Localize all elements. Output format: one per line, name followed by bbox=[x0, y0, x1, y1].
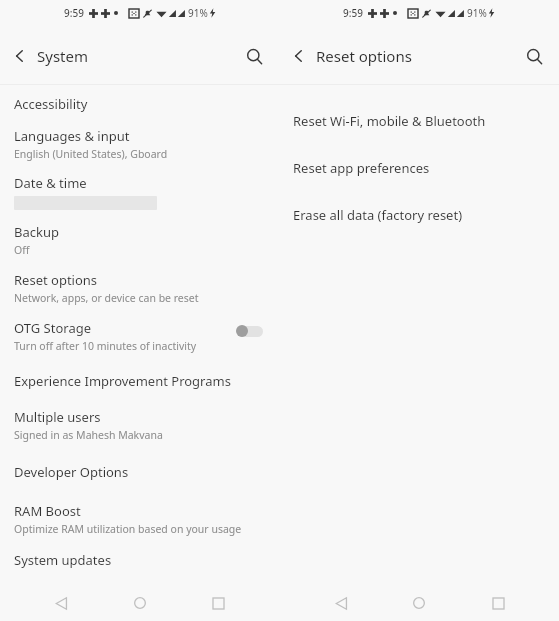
staticText: English (United States), Gboard bbox=[14, 147, 168, 161]
staticText: Multiple users bbox=[14, 408, 101, 426]
staticText: Backup bbox=[14, 223, 59, 241]
button[interactable]: Reset options bbox=[0, 264, 279, 312]
button[interactable]: Erase all data (factory reset) bbox=[279, 203, 559, 227]
button[interactable]: Recent apps bbox=[201, 586, 235, 620]
staticText: System bbox=[37, 46, 88, 66]
staticText: Accessibility bbox=[14, 95, 88, 113]
button[interactable]: Reset app preferences bbox=[279, 156, 559, 180]
button[interactable]: Reset Wi-Fi, mobile & Bluetooth bbox=[279, 109, 559, 133]
button[interactable]: Backup bbox=[0, 216, 279, 264]
button[interactable]: System updates bbox=[0, 543, 279, 577]
staticText: 91% bbox=[467, 6, 487, 20]
button[interactable]: Home bbox=[402, 586, 436, 620]
button[interactable]: OTG Storage bbox=[0, 312, 279, 360]
button[interactable]: Search bbox=[517, 39, 551, 73]
staticText: Developer Options bbox=[14, 463, 129, 481]
staticText: Erase all data (factory reset) bbox=[293, 206, 463, 224]
staticText: Date & time bbox=[14, 174, 87, 192]
staticText: Reset options bbox=[316, 46, 412, 66]
button[interactable]: Back bbox=[3, 39, 37, 73]
staticText: 91% bbox=[188, 6, 208, 20]
staticText: OTG Storage bbox=[14, 319, 91, 337]
staticText: System updates bbox=[14, 551, 112, 569]
button[interactable]: RAM Boost bbox=[0, 495, 279, 543]
button[interactable]: Recent apps bbox=[481, 586, 515, 620]
button[interactable]: Search bbox=[237, 39, 271, 73]
button[interactable]: Experience Improvement Programs bbox=[0, 360, 279, 401]
button[interactable]: Back bbox=[282, 39, 316, 73]
staticText: 9:59 bbox=[343, 6, 363, 20]
button[interactable]: Back bbox=[324, 586, 358, 620]
button[interactable]: Home bbox=[123, 586, 157, 620]
staticText: Experience Improvement Programs bbox=[14, 372, 231, 390]
button[interactable]: Back bbox=[44, 586, 78, 620]
staticText: Languages & input bbox=[14, 127, 130, 145]
button[interactable]: Date & time bbox=[0, 168, 279, 216]
staticText: Reset options bbox=[14, 271, 98, 289]
staticText: RAM Boost bbox=[14, 502, 81, 520]
staticText: Network, apps, or device can be reset bbox=[14, 291, 199, 305]
button[interactable]: Developer Options bbox=[0, 449, 279, 495]
staticText: Reset Wi-Fi, mobile & Bluetooth bbox=[293, 112, 486, 130]
button[interactable]: OTG Storage toggle bbox=[235, 320, 265, 342]
staticText: 9:59 bbox=[64, 6, 84, 20]
staticText: Reset app preferences bbox=[293, 159, 430, 177]
button[interactable]: Languages & input bbox=[0, 120, 279, 168]
button[interactable]: Multiple users bbox=[0, 401, 279, 449]
button[interactable]: Accessibility bbox=[0, 88, 279, 120]
staticText: Signed in as Mahesh Makvana bbox=[14, 428, 163, 442]
staticText: Optimize RAM utilization based on your u… bbox=[14, 522, 242, 536]
staticText: Off bbox=[14, 243, 30, 257]
staticText: Turn off after 10 minutes of inactivity bbox=[14, 339, 197, 353]
